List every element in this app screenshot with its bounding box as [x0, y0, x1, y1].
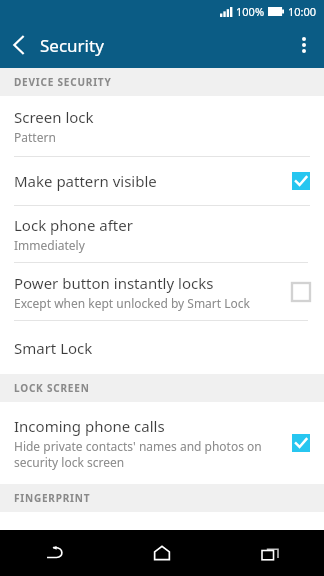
button[interactable]: Power button instantly locks — [0, 263, 324, 320]
button[interactable]: Lock phone after — [0, 206, 324, 262]
staticText: LOCK SCREEN — [14, 381, 90, 395]
staticText: Immediately — [14, 237, 85, 253]
staticText: security lock screen — [14, 454, 125, 470]
button[interactable]: Home — [108, 530, 216, 576]
button[interactable]: Back — [0, 530, 108, 576]
button[interactable]: Recent apps — [216, 530, 324, 576]
button[interactable]: Back — [0, 26, 38, 64]
staticText: 100% — [236, 4, 265, 19]
button[interactable]: Make pattern visible — [0, 157, 324, 205]
staticText: Power button instantly locks — [14, 273, 214, 293]
staticText: Lock phone after — [14, 215, 133, 235]
staticText: Except when kept unlocked by Smart Lock — [14, 295, 250, 311]
staticText: 10:00 — [288, 4, 317, 19]
staticText: Make pattern visible — [14, 171, 157, 191]
staticText: Smart Lock — [14, 338, 93, 358]
staticText: Screen lock — [14, 107, 94, 127]
button[interactable]: Smart Lock — [0, 321, 324, 374]
staticText: Security — [40, 34, 104, 57]
staticText: FINGERPRINT — [14, 491, 91, 505]
staticText: Incoming phone calls — [14, 416, 165, 436]
staticText: Pattern — [14, 129, 56, 145]
button[interactable]: Incoming phone calls — [0, 402, 324, 484]
button[interactable]: More options — [284, 25, 324, 65]
staticText: Hide private contacts' names and photos … — [14, 438, 262, 454]
staticText: DEVICE SECURITY — [14, 75, 112, 89]
button[interactable]: Screen lock — [0, 96, 324, 156]
